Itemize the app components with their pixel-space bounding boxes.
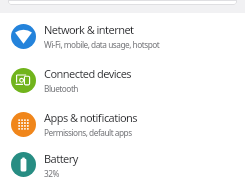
staticText: Connected devices (44, 66, 132, 81)
button[interactable]: Connected devices (0, 58, 245, 102)
button[interactable]: Battery (0, 146, 245, 183)
staticText: Network & internet (44, 22, 134, 37)
staticText: Apps & notifications (44, 110, 138, 125)
staticText: Bluetooth (44, 83, 78, 94)
button[interactable]: Network & internet (0, 14, 245, 58)
button[interactable]: Apps & notifications (0, 102, 245, 146)
staticText: Permissions, default apps (44, 127, 132, 138)
staticText: Battery (44, 151, 78, 166)
staticText: Wi-Fi, mobile, data usage, hotspot (44, 39, 160, 50)
staticText: 32% (44, 168, 59, 179)
